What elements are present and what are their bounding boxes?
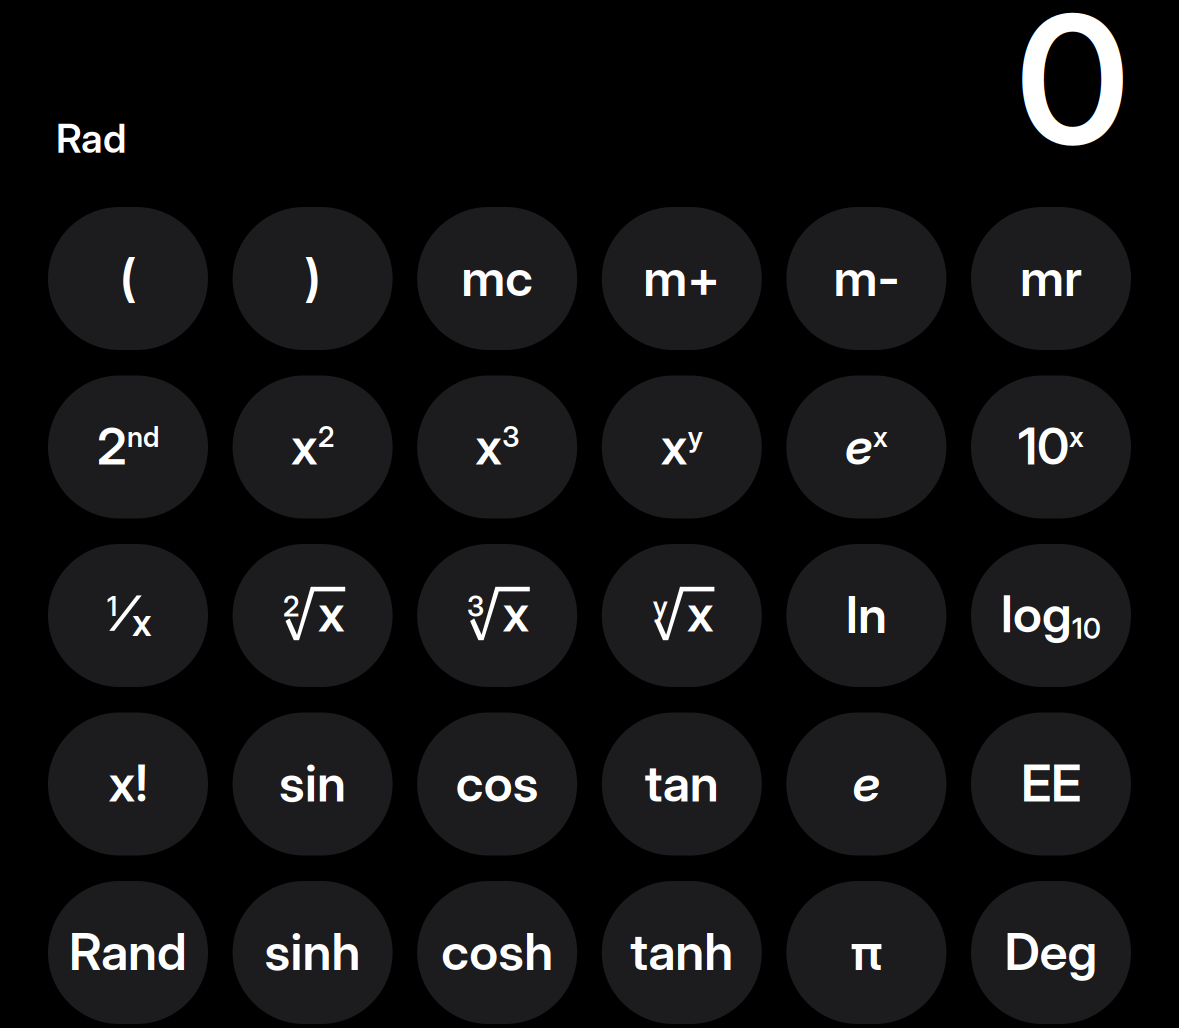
button[interactable]: tanh [602, 881, 762, 1024]
staticText: 0 [1016, 0, 1129, 187]
staticText: x! [108, 752, 147, 814]
button[interactable]: Deg [971, 881, 1131, 1024]
staticText: ) [305, 247, 321, 308]
button[interactable]: square root [233, 544, 393, 687]
staticText: 3 [467, 589, 484, 623]
button[interactable]: one over x [48, 544, 208, 687]
staticText: Deg [1004, 921, 1097, 982]
staticText: cos [456, 752, 539, 814]
button[interactable]: cos [417, 712, 577, 855]
staticText: Rand [69, 921, 187, 982]
staticText: ex [845, 416, 888, 476]
button[interactable]: sin [233, 712, 393, 855]
button[interactable]: x squared [233, 375, 393, 518]
button[interactable]: mc [417, 207, 577, 350]
button[interactable]: tan [602, 712, 762, 855]
staticText: sinh [265, 921, 361, 982]
button[interactable]: second function [48, 375, 208, 518]
staticText: EE [1021, 752, 1081, 814]
staticText: cosh [441, 921, 553, 982]
button[interactable]: ) [233, 207, 393, 350]
staticText: sin [279, 752, 346, 814]
button[interactable]: EE [971, 712, 1131, 855]
button[interactable]: π [786, 881, 946, 1024]
staticText: x2 [291, 416, 334, 476]
staticText: mc [461, 247, 533, 308]
staticText: 2 [283, 589, 299, 623]
button[interactable]: ten to the power of x [971, 375, 1131, 518]
button[interactable]: cube root [417, 544, 577, 687]
staticText: x [318, 582, 345, 644]
staticText: x [502, 582, 529, 644]
staticText: x3 [475, 416, 519, 476]
button[interactable]: e to the power of x [786, 375, 946, 518]
button[interactable]: ln [786, 544, 946, 687]
staticText: Rad [56, 114, 126, 162]
button[interactable]: e [786, 712, 946, 855]
staticText: m+ [643, 247, 720, 308]
button[interactable]: x to the power of y [602, 375, 762, 518]
staticText: y [653, 589, 668, 623]
staticText: tan [645, 752, 719, 814]
staticText: mr [1020, 247, 1082, 308]
staticText: e [852, 752, 880, 814]
button[interactable]: y-th root [602, 544, 762, 687]
staticText: ( [120, 247, 136, 308]
staticText: xy [661, 416, 703, 476]
staticText: 2nd [97, 416, 159, 476]
button[interactable]: mr [971, 207, 1131, 350]
button[interactable]: m- [786, 207, 946, 350]
staticText: ln [846, 584, 887, 645]
staticText: π [850, 921, 882, 982]
staticText: x [132, 600, 152, 645]
button[interactable]: m+ [602, 207, 762, 350]
staticText: log10 [1001, 584, 1101, 645]
button[interactable]: cosh [417, 881, 577, 1024]
staticText: m- [833, 247, 899, 308]
button[interactable]: ( [48, 207, 208, 350]
button[interactable]: x! [48, 712, 208, 855]
button[interactable]: sinh [233, 881, 393, 1024]
button[interactable]: Rad [56, 114, 126, 162]
staticText: tanh [630, 921, 733, 982]
staticText: 1 [107, 590, 117, 622]
button[interactable]: x cubed [417, 375, 577, 518]
staticText: x [687, 582, 714, 644]
staticText: 10x [1018, 416, 1084, 476]
button[interactable]: log base 10 [971, 544, 1131, 687]
button[interactable]: Rand [48, 881, 208, 1024]
